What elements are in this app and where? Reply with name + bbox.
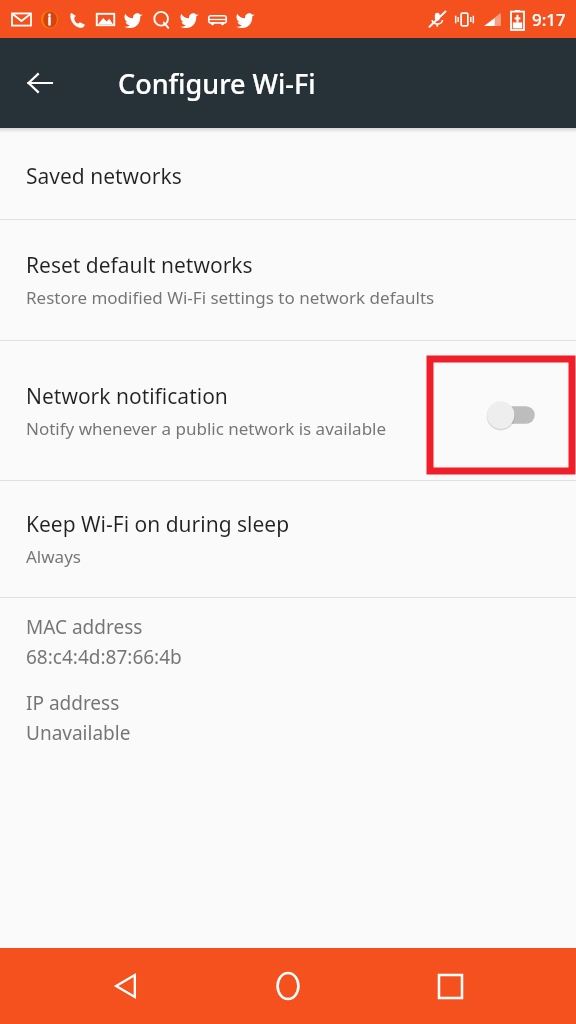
- button[interactable]: Network notification toggle: [478, 393, 544, 437]
- staticText: Saved networks: [26, 162, 182, 191]
- button[interactable]: Saved networks: [0, 133, 576, 219]
- staticText: 9:17: [532, 8, 566, 31]
- button[interactable]: Back: [90, 950, 162, 1022]
- staticText: 68:c4:4d:87:66:4b: [26, 644, 182, 670]
- staticText: Restore modified Wi-Fi settings to netwo…: [26, 286, 435, 309]
- staticText: Reset default networks: [26, 251, 253, 280]
- staticText: Keep Wi-Fi on during sleep: [26, 510, 290, 539]
- staticText: Unavailable: [26, 720, 131, 746]
- button[interactable]: Recent apps: [414, 950, 486, 1022]
- staticText: MAC address: [26, 614, 143, 640]
- button[interactable]: Network notification: [0, 341, 576, 480]
- staticText: Configure Wi-Fi: [118, 65, 316, 102]
- button[interactable]: Home: [252, 950, 324, 1022]
- button[interactable]: Back: [12, 55, 68, 111]
- staticText: Notify whenever a public network is avai…: [26, 417, 387, 440]
- staticText: IP address: [26, 690, 120, 716]
- staticText: Always: [26, 545, 81, 568]
- button[interactable]: Keep Wi-Fi on during sleep: [0, 481, 576, 597]
- button[interactable]: Reset default networks: [0, 220, 576, 340]
- staticText: Network notification: [26, 382, 228, 411]
